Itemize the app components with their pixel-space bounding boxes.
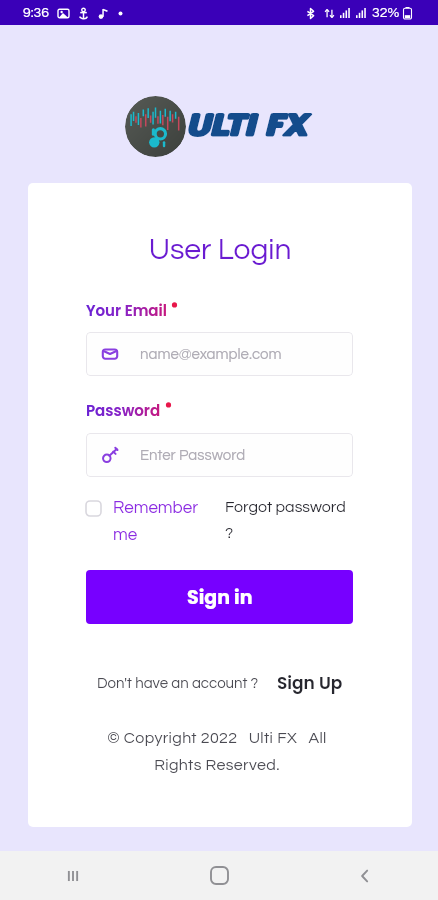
staticText: © Copyright 2022 Ulti FX All Rights Rese… bbox=[90, 730, 344, 774]
staticText: name@example.com bbox=[140, 347, 282, 362]
button[interactable]: Home bbox=[146, 851, 292, 900]
button[interactable]: Back bbox=[292, 851, 438, 900]
staticText: Sign in bbox=[187, 584, 253, 611]
staticText: Remember bbox=[113, 499, 199, 526]
button[interactable]: Recents bbox=[0, 851, 146, 900]
other: Email bbox=[102, 346, 118, 362]
staticText: Password bbox=[86, 400, 161, 421]
button[interactable]: Email bbox=[86, 332, 353, 376]
staticText: Don't have an account ? bbox=[97, 676, 259, 691]
staticText: User Login bbox=[28, 234, 412, 265]
button[interactable]: Sign Up bbox=[277, 671, 343, 695]
button[interactable]: Forgot password bbox=[225, 499, 351, 541]
button[interactable]: Remember bbox=[86, 499, 225, 544]
button[interactable]: Password bbox=[86, 433, 353, 477]
other: Password bbox=[102, 447, 118, 463]
staticText: Enter Password bbox=[140, 448, 246, 463]
staticText: 32% bbox=[372, 6, 400, 20]
staticText: ? bbox=[225, 525, 234, 541]
staticText: 9:36 bbox=[23, 6, 49, 20]
staticText: me bbox=[113, 526, 138, 544]
staticText: Forgot password bbox=[225, 499, 346, 525]
staticText: Sign Up bbox=[277, 671, 343, 695]
staticText: Your Email bbox=[86, 300, 167, 321]
button[interactable]: Sign in bbox=[86, 570, 353, 624]
staticText: ULTI FX bbox=[186, 98, 308, 150]
